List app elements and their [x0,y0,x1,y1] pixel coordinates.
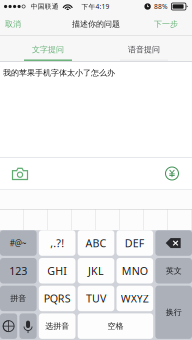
staticText: 空格 [107,321,123,331]
staticText: 换行 [166,307,182,317]
staticText: 下一步 [154,19,178,29]
button[interactable]: 英文 [155,258,192,283]
staticText: 下午4:19 [81,2,109,11]
staticText: 选拼音 [45,321,69,331]
button[interactable]: Add photo [2,158,38,188]
staticText: 我的苹果手机字体太小了怎么办 [3,68,115,78]
button[interactable]: 空格 [78,313,153,339]
button[interactable]: GHI [39,258,75,283]
button[interactable]: WXYZ [116,286,153,311]
staticText: DEF [125,236,145,250]
button[interactable]: DEF [116,230,153,256]
staticText: 123 [9,264,27,278]
button[interactable]: 语音提问 [96,35,192,61]
button[interactable]: Set reward [154,158,190,188]
button[interactable]: 选拼音 [39,313,75,339]
button[interactable]: JKL [78,258,114,283]
button[interactable]: 取消 [0,13,35,35]
button[interactable]: 换行 [155,286,192,339]
button[interactable]: ABC [78,230,114,256]
button[interactable]: 下一步 [148,13,192,35]
staticText: JKL [88,264,104,278]
staticText: 中国联通 [31,2,59,11]
button[interactable]: 文字提问 [0,35,96,61]
staticText: PQRS [44,291,71,306]
staticText: WXYZ [121,291,149,306]
button[interactable]: Dictation [19,313,37,339]
button[interactable]: 拼音 [0,286,37,311]
staticText: ,.?! [50,236,64,250]
button[interactable]: 123 [0,258,37,283]
staticText: MNO [122,264,148,278]
staticText: 语音提问 [128,45,160,54]
staticText: 88% [154,2,168,11]
staticText: 取消 [5,19,21,29]
staticText: #@~ [10,238,27,248]
staticText: TUV [86,291,106,306]
button[interactable]: #@~ [0,230,37,256]
button[interactable]: MNO [116,258,153,283]
staticText: GHI [47,264,67,278]
button[interactable]: PQRS [39,286,75,311]
button[interactable]: ,.?! [39,230,75,256]
staticText: 描述你的问题 [72,19,120,29]
staticText: 拼音 [10,293,26,303]
button[interactable]: Switch keyboard [0,313,17,339]
staticText: ABC [85,236,106,250]
staticText: 文字提问 [32,45,64,54]
staticText: 英文 [166,266,182,276]
button[interactable]: TUV [78,286,114,311]
